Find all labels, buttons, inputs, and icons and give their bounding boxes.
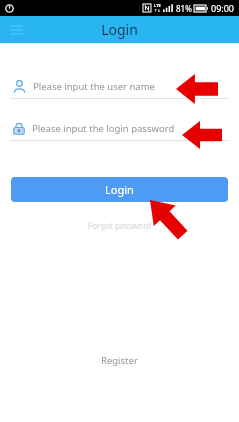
staticText: Please input the login password xyxy=(32,122,175,135)
staticText: 09:00 xyxy=(211,2,235,14)
staticText: Login xyxy=(101,20,138,39)
staticText: Register xyxy=(101,354,138,367)
staticText: ↑↓ xyxy=(154,8,161,13)
staticText: Please input the user name xyxy=(33,80,155,93)
button[interactable]: Forgot password xyxy=(84,216,156,235)
button[interactable]: Register xyxy=(95,348,144,373)
button[interactable]: Login xyxy=(11,177,228,202)
button[interactable]: Please input the login password xyxy=(0,116,239,140)
staticText: 81% xyxy=(176,3,192,14)
button[interactable]: Please input the user name xyxy=(0,74,239,98)
staticText: LTE xyxy=(154,3,161,8)
button[interactable]: Menu xyxy=(4,18,28,42)
staticText: Login xyxy=(105,182,134,197)
staticText: Forgot password xyxy=(88,220,152,231)
